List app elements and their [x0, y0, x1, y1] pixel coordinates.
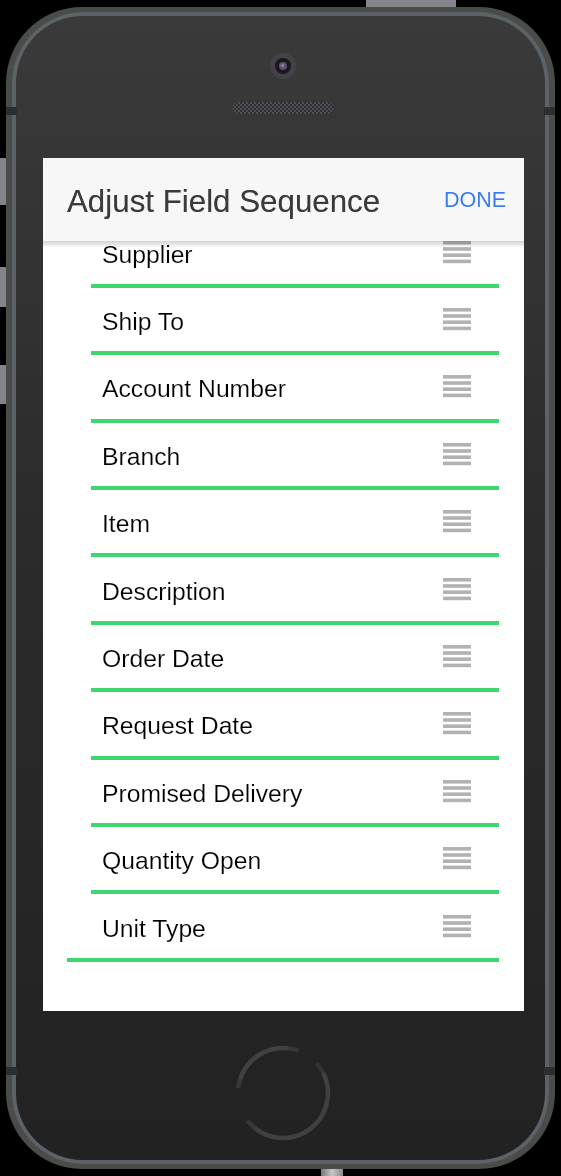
button[interactable]: Branch — [43, 423, 524, 490]
button[interactable]: Supplier — [43, 221, 524, 288]
button[interactable]: Description — [43, 558, 524, 625]
staticText: Promised Delivery — [102, 780, 303, 808]
other: Reorder Promised Delivery — [443, 780, 471, 802]
staticText: Adjust Field Sequence — [67, 184, 381, 219]
other: Reorder Branch — [443, 443, 471, 465]
other: Reorder Order Date — [443, 645, 471, 667]
button[interactable]: Quantity Open — [43, 827, 524, 894]
button[interactable]: Request Date — [43, 692, 524, 759]
staticText: Request Date — [102, 712, 253, 740]
button[interactable]: Item — [43, 490, 524, 557]
button[interactable]: Ship To — [43, 288, 524, 355]
other: Reorder Unit Type — [443, 915, 471, 937]
other: Reorder Account Number — [443, 375, 471, 397]
other: Reorder Item — [443, 510, 471, 532]
button[interactable]: Account Number — [43, 355, 524, 422]
staticText: Quantity Open — [102, 847, 262, 875]
button[interactable]: DONE — [424, 174, 524, 226]
other: Reorder Quantity Open — [443, 847, 471, 869]
other: Reorder Description — [443, 578, 471, 600]
button[interactable]: Unit Type — [43, 895, 524, 962]
staticText: Order Date — [102, 645, 225, 673]
staticText: Ship To — [102, 308, 184, 336]
button[interactable]: Order Date — [43, 625, 524, 692]
staticText: Supplier — [102, 241, 193, 269]
staticText: Unit Type — [102, 915, 206, 943]
staticText: Item — [102, 510, 151, 538]
other: Reorder Ship To — [443, 308, 471, 330]
other: Reorder Supplier — [443, 241, 471, 263]
staticText: DONE — [444, 188, 507, 212]
staticText: Branch — [102, 443, 181, 471]
other: Reorder Request Date — [443, 712, 471, 734]
button[interactable]: Promised Delivery — [43, 760, 524, 827]
staticText: Account Number — [102, 375, 286, 403]
staticText: Description — [102, 578, 226, 606]
staticText: Adjust Field Sequence — [67, 184, 381, 219]
